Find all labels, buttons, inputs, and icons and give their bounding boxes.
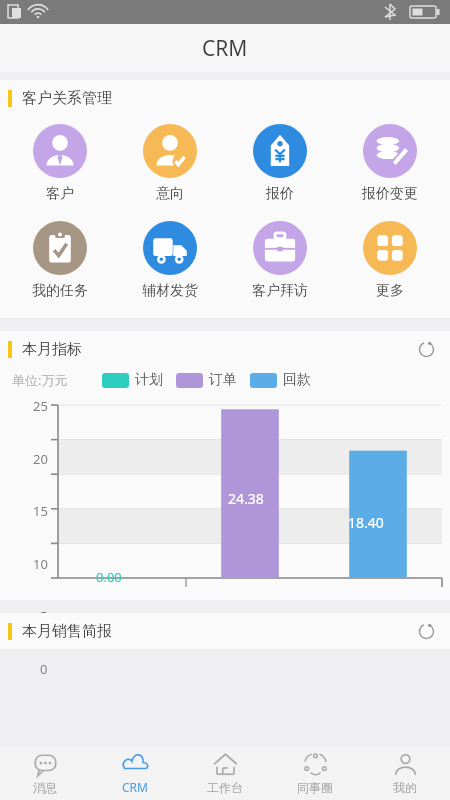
staticText: 20 bbox=[33, 450, 48, 468]
staticText: 意向 bbox=[156, 185, 184, 203]
staticText: 我的任务 bbox=[32, 282, 88, 300]
staticText: 更多 bbox=[376, 282, 404, 300]
button[interactable]: 消息 bbox=[0, 746, 90, 800]
staticText: 同事圈 bbox=[297, 780, 333, 795]
staticText: 报价 bbox=[266, 185, 294, 203]
staticText: 0.00 bbox=[96, 568, 122, 586]
staticText: 消息 bbox=[33, 780, 57, 795]
staticText: 5 bbox=[40, 607, 48, 625]
staticText: 18.40 bbox=[348, 513, 384, 532]
staticText: CRM bbox=[202, 34, 248, 63]
button[interactable]: 工作台 bbox=[180, 746, 270, 800]
staticText: 0 bbox=[40, 660, 48, 678]
button[interactable]: 辅材发货 bbox=[120, 219, 220, 302]
staticText: CRM bbox=[122, 779, 148, 795]
button[interactable]: 同事圈 bbox=[270, 746, 360, 800]
staticText: 客户 bbox=[46, 185, 74, 203]
staticText: 报价变更 bbox=[362, 185, 418, 203]
button[interactable]: Refresh bbox=[410, 615, 442, 647]
staticText: 25 bbox=[33, 397, 48, 415]
button[interactable]: 客户 bbox=[10, 122, 110, 205]
button[interactable]: 我的任务 bbox=[10, 219, 110, 302]
button[interactable]: 意向 bbox=[120, 122, 220, 205]
staticText: 15 bbox=[33, 502, 48, 520]
staticText: 辅材发货 bbox=[142, 282, 198, 300]
staticText: 客户关系管理 bbox=[22, 89, 112, 108]
staticText: 本月指标 bbox=[22, 340, 82, 359]
button[interactable]: 报价变更 bbox=[340, 122, 440, 205]
staticText: 计划 bbox=[135, 371, 163, 389]
button[interactable]: Refresh bbox=[410, 333, 442, 365]
staticText: 客户拜访 bbox=[252, 282, 308, 300]
staticText: 10 bbox=[33, 555, 48, 573]
staticText: 24.38 bbox=[228, 489, 264, 508]
staticText: 回款 bbox=[283, 371, 311, 389]
staticText: 订单 bbox=[209, 371, 237, 389]
button[interactable]: 我的 bbox=[360, 746, 450, 800]
button[interactable]: 更多 bbox=[340, 219, 440, 302]
staticText: 本月销售简报 bbox=[22, 622, 112, 641]
button[interactable]: 客户拜访 bbox=[230, 219, 330, 302]
staticText: 我的 bbox=[393, 780, 417, 795]
button[interactable]: CRM bbox=[90, 746, 180, 800]
staticText: 工作台 bbox=[207, 780, 243, 795]
staticText: 单位:万元 bbox=[12, 371, 68, 389]
button[interactable]: 报价 bbox=[230, 122, 330, 205]
